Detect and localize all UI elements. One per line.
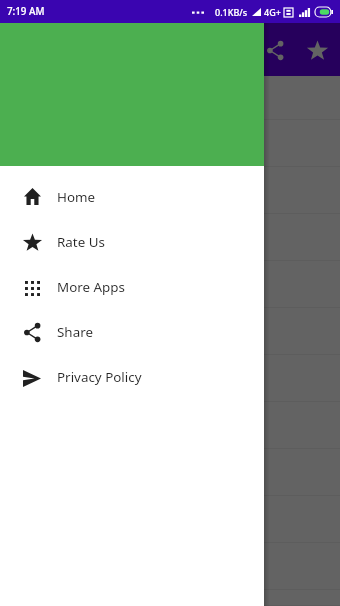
button[interactable] bbox=[0, 308, 340, 355]
button[interactable] bbox=[0, 23, 340, 606]
staticText: 7:19 AM bbox=[7, 5, 45, 18]
button[interactable] bbox=[0, 214, 340, 261]
staticText: Home bbox=[57, 188, 96, 206]
button[interactable]: Rate bbox=[296, 29, 338, 71]
button[interactable]: Share bbox=[0, 309, 264, 354]
button[interactable] bbox=[0, 355, 340, 402]
button[interactable] bbox=[0, 402, 340, 449]
button[interactable] bbox=[0, 76, 340, 120]
staticText: Share bbox=[57, 323, 93, 341]
staticText: Privacy Policy bbox=[57, 368, 142, 386]
button[interactable]: Rate Us bbox=[0, 219, 264, 264]
button[interactable]: Home bbox=[0, 174, 264, 219]
button[interactable] bbox=[0, 496, 340, 543]
button[interactable] bbox=[0, 590, 340, 606]
staticText: 4G+ bbox=[264, 6, 281, 18]
button[interactable] bbox=[0, 261, 340, 308]
button[interactable] bbox=[0, 120, 340, 167]
staticText: More Apps bbox=[57, 278, 125, 296]
button[interactable]: Privacy Policy bbox=[0, 354, 264, 399]
button[interactable] bbox=[0, 449, 340, 496]
button[interactable] bbox=[0, 543, 340, 590]
staticText: 0.1KB/s bbox=[215, 6, 248, 18]
button[interactable]: More Apps bbox=[0, 264, 264, 309]
button[interactable]: Share bbox=[254, 29, 296, 71]
button[interactable] bbox=[0, 167, 340, 214]
staticText: Rate Us bbox=[57, 233, 105, 251]
